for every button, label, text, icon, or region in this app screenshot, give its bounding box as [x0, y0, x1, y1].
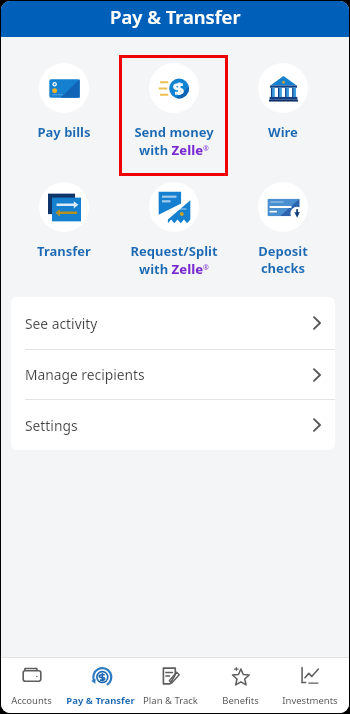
button[interactable]: Deposit checks: [228, 182, 337, 277]
staticText: Accounts: [11, 694, 52, 707]
button[interactable]: Settings: [11, 400, 335, 450]
staticText: Wire: [268, 123, 298, 141]
button[interactable]: Pay & Transfer: [66, 658, 135, 713]
button[interactable]: Transfer: [9, 182, 119, 260]
button[interactable]: Accounts: [1, 658, 66, 713]
staticText: Deposit checks: [258, 242, 308, 277]
button[interactable]: Investments: [275, 658, 345, 713]
button[interactable]: Send money: [119, 63, 228, 157]
button[interactable]: Manage recipients: [11, 350, 335, 400]
staticText: Pay & Transfer: [66, 694, 135, 707]
button[interactable]: Request/Split: [119, 182, 228, 276]
button[interactable]: Benefits: [205, 658, 275, 713]
staticText: Plan & Track: [143, 694, 198, 707]
staticText: Manage recipients: [25, 365, 145, 384]
staticText: Settings: [25, 416, 78, 435]
staticText: with Zelle®: [139, 260, 209, 276]
button[interactable]: See activity: [11, 297, 335, 350]
button[interactable]: Plan & Track: [135, 658, 205, 713]
staticText: Send money: [134, 123, 214, 141]
staticText: Transfer: [37, 242, 91, 260]
staticText: Pay bills: [37, 123, 91, 141]
staticText: See activity: [25, 314, 98, 333]
staticText: Investments: [282, 694, 338, 707]
staticText: Request/Split: [130, 242, 218, 260]
staticText: with Zelle®: [139, 141, 209, 157]
button[interactable]: Wire: [228, 63, 337, 141]
staticText: Pay & Transfer: [110, 4, 241, 29]
button[interactable]: Pay bills: [9, 63, 119, 141]
staticText: Benefits: [222, 694, 259, 707]
